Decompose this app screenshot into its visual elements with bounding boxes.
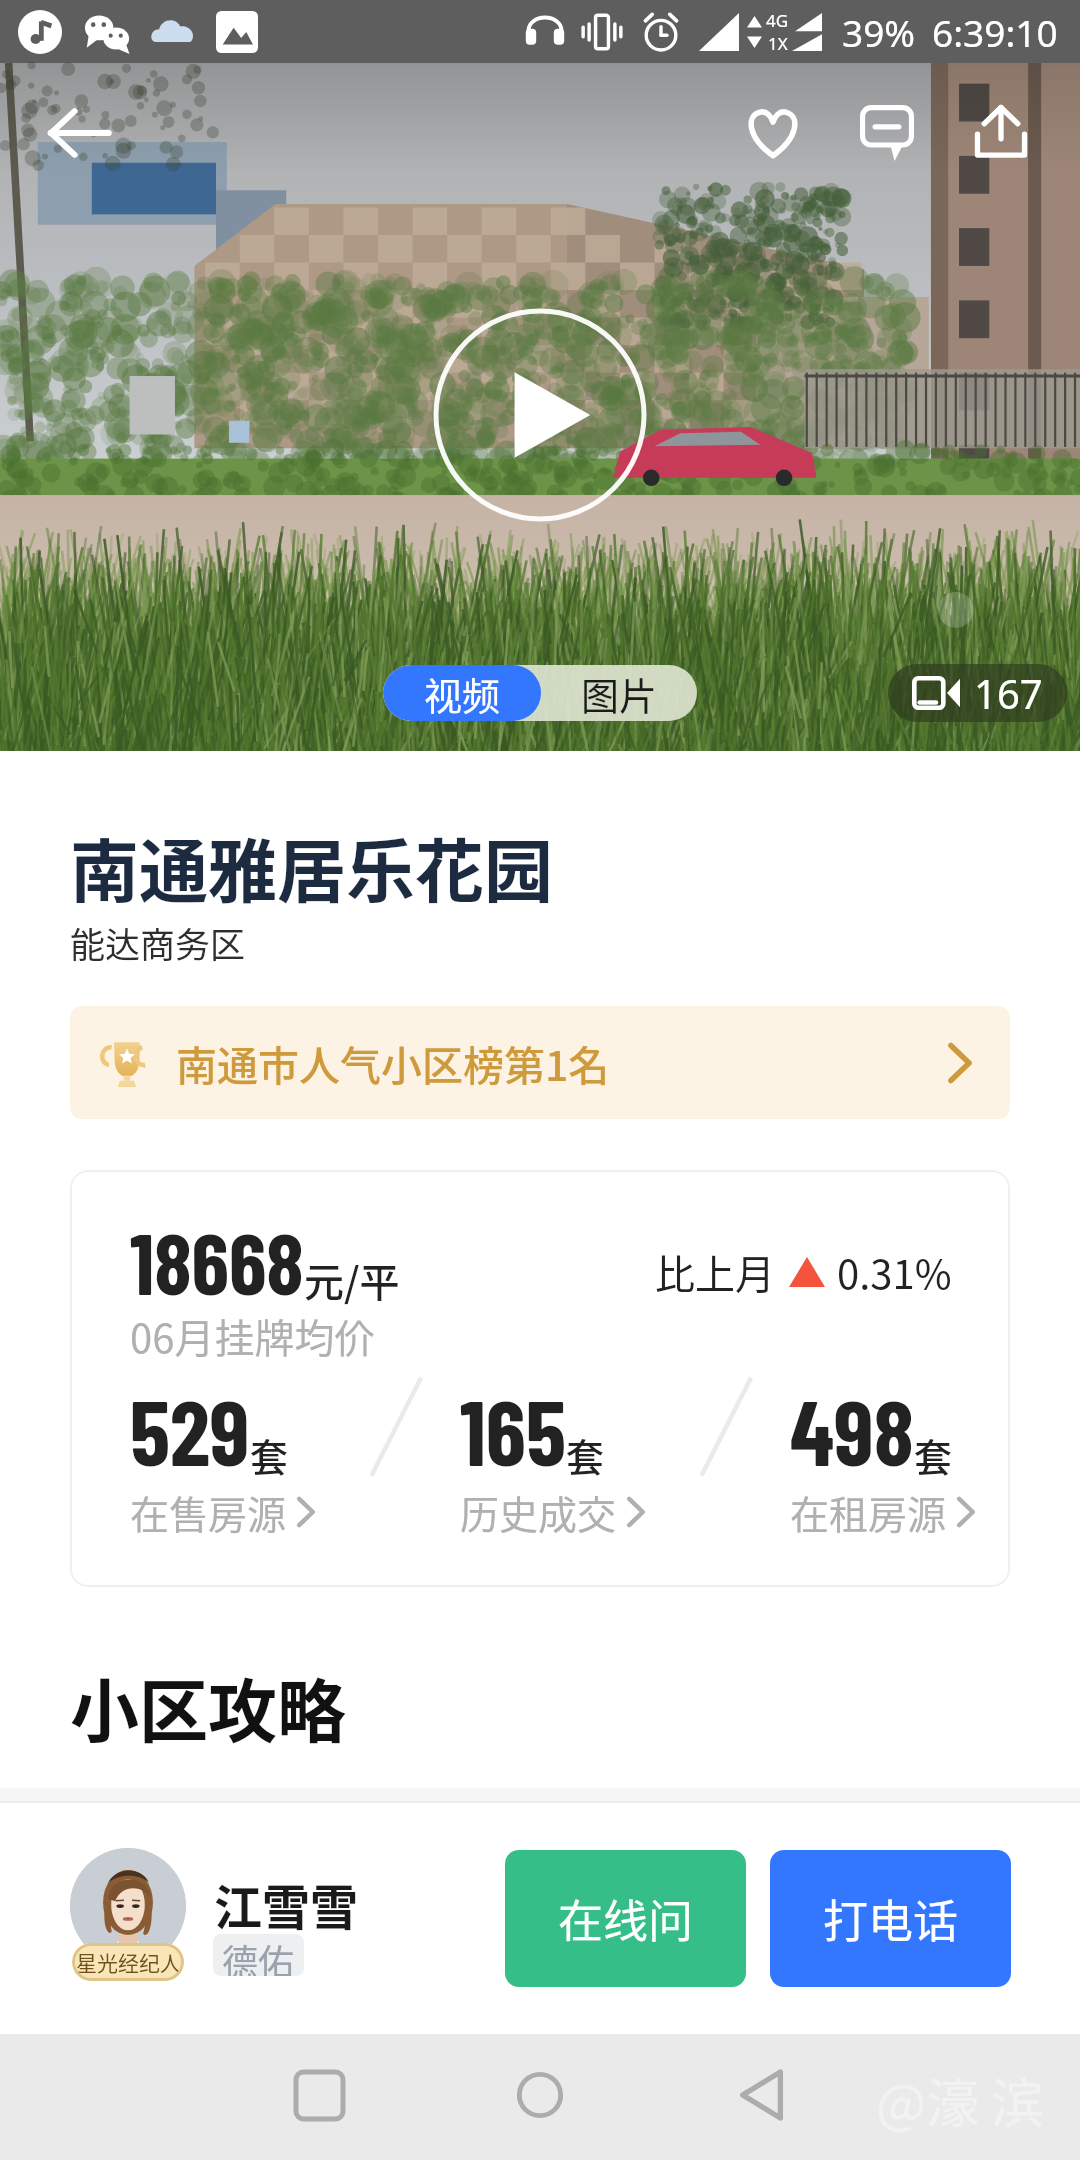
button[interactable]: 167 (888, 664, 1067, 722)
staticText: 1X (768, 32, 788, 55)
button[interactable]: Share (946, 78, 1056, 188)
staticText: 在线问 (558, 1886, 694, 1951)
staticText: 套 (566, 1427, 605, 1482)
staticText: 视频 (424, 666, 501, 721)
staticText: 南通市人气小区榜第1名 (176, 1033, 610, 1092)
staticText: 套 (914, 1427, 953, 1482)
staticText: 小区攻略 (70, 1657, 346, 1757)
staticText: 星光经纪人 (76, 1947, 181, 1977)
staticText: 18668 (130, 1210, 304, 1312)
button[interactable]: Play video (433, 308, 647, 522)
button[interactable]: Recent apps (264, 2040, 374, 2150)
staticText: 4G (766, 9, 789, 32)
staticText: 南通雅居乐花园 (70, 817, 553, 917)
staticText: 图片 (581, 666, 658, 721)
staticText: 167 (974, 666, 1043, 720)
staticText: @濠 滨 (876, 2062, 1045, 2139)
button[interactable]: Home (485, 2040, 595, 2150)
button[interactable]: 视频 (383, 665, 541, 721)
button[interactable]: 打电话 (770, 1850, 1011, 1987)
staticText: 能达商务区 (70, 917, 246, 968)
button[interactable]: 南通市人气小区榜第1名 (70, 1006, 1010, 1119)
staticText: 历史成交 (460, 1484, 617, 1540)
button[interactable]: Back (707, 2040, 817, 2150)
staticText: 德佑 (222, 1934, 295, 1976)
button[interactable]: 529 (130, 1375, 352, 1540)
staticText: 529 (130, 1375, 250, 1484)
staticText: 0.31% (837, 1243, 952, 1301)
button[interactable]: Agent avatar (70, 1848, 186, 1964)
staticText: 39% (842, 7, 916, 57)
button[interactable]: 图片 (541, 665, 697, 721)
staticText: 165 (460, 1375, 566, 1484)
staticText: 在售房源 (130, 1484, 287, 1540)
staticText: 元/平 (304, 1251, 400, 1309)
staticText: 6:39:10 (932, 7, 1058, 57)
button[interactable]: Back (24, 78, 134, 188)
staticText: 套 (250, 1427, 289, 1482)
staticText: 比上月 (655, 1243, 775, 1301)
staticText: 打电话 (823, 1886, 959, 1951)
button[interactable]: Messages (832, 78, 942, 188)
button[interactable]: 在线问 (505, 1850, 746, 1987)
button[interactable]: 498 (790, 1375, 1010, 1540)
button[interactable]: Favorite (718, 78, 828, 188)
staticText: 06月挂牌均价 (130, 1307, 375, 1365)
staticText: 498 (790, 1375, 914, 1484)
staticText: 在租房源 (790, 1484, 947, 1540)
staticText: 江雪雪 (214, 1869, 359, 1939)
button[interactable]: 165 (460, 1375, 682, 1540)
